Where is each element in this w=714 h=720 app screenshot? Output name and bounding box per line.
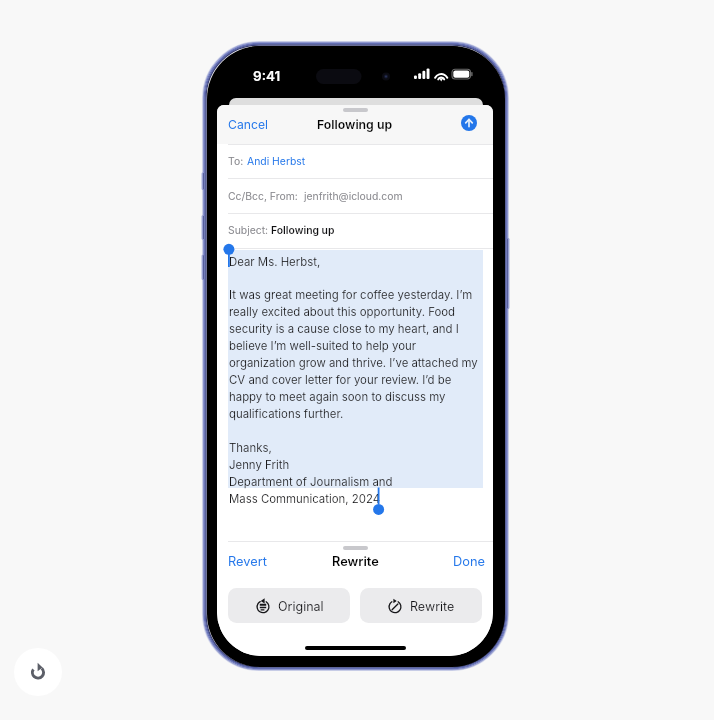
staticText: jenfrith@icloud.com	[301, 190, 403, 203]
staticText: Done	[453, 554, 485, 569]
staticText: 9:41	[253, 68, 281, 84]
staticText: Subject:	[228, 224, 271, 237]
staticText: Cancel	[228, 117, 268, 132]
button[interactable]: Done	[444, 549, 493, 574]
button[interactable]: Subject:	[217, 213, 493, 248]
button[interactable]: Cancel	[219, 111, 277, 138]
staticText: Revert	[228, 554, 267, 569]
staticText: Following up	[317, 117, 393, 132]
staticText: Rewrite	[410, 599, 455, 614]
staticText: To:	[228, 155, 247, 168]
button[interactable]: Cc/Bcc, From:	[217, 179, 493, 214]
button[interactable]: Revert	[219, 549, 276, 574]
staticText: Original	[278, 599, 324, 614]
button[interactable]: To:	[217, 144, 493, 179]
button[interactable]: Original	[228, 588, 350, 623]
button[interactable]: Rewrite	[360, 588, 482, 623]
button[interactable]: Send	[461, 115, 477, 131]
staticText: Following up	[271, 224, 335, 237]
staticText: Cc/Bcc, From:	[228, 190, 301, 203]
button[interactable]: Refresh	[14, 648, 62, 696]
staticText: Rewrite	[332, 554, 379, 569]
button[interactable]: Dear Ms. Herbst, It was great meeting fo…	[217, 248, 493, 508]
staticText: Andi Herbst	[247, 155, 306, 168]
staticText: Dear Ms. Herbst, It was great meeting fo…	[229, 255, 479, 506]
